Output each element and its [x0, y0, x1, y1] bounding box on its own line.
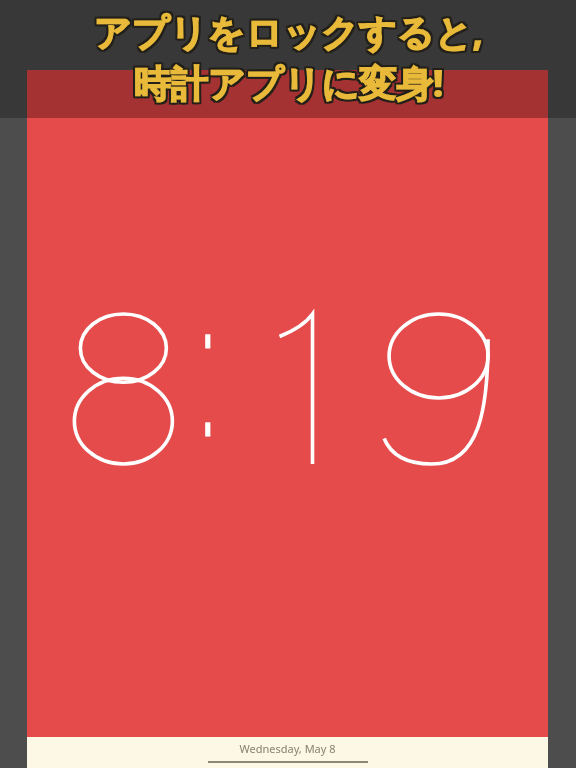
staticText: 時計アプリに変身!: [131, 55, 442, 106]
staticText: アプリをロックすると,: [91, 8, 482, 59]
staticText: アプリをロックすると,: [95, 8, 486, 59]
staticText: アプリをロックすると,: [93, 8, 484, 59]
staticText: アプリをロックすると,: [91, 4, 482, 55]
staticText: 時計アプリに変身!: [135, 59, 446, 110]
staticText: 時計アプリに変身!: [133, 59, 444, 110]
staticText: Wednesday, May 8: [239, 741, 336, 756]
staticText: 時計アプリに変身!: [135, 57, 446, 108]
staticText: 時計アプリに変身!: [135, 55, 446, 106]
staticText: アプリをロックすると,: [95, 6, 486, 57]
button[interactable]: Wednesday, May 8: [27, 118, 548, 768]
staticText: アプリをロックすると,: [93, 4, 484, 55]
staticText: 時計アプリに変身!: [131, 57, 442, 108]
staticText: アプリをロックすると,: [95, 4, 486, 55]
staticText: 時計アプリに変身!: [131, 59, 442, 110]
staticText: アプリをロックすると,: [93, 6, 484, 57]
staticText: 時計アプリに変身!: [133, 55, 444, 106]
staticText: 時計アプリに変身!: [133, 57, 444, 108]
staticText: アプリをロックすると,: [91, 6, 482, 57]
